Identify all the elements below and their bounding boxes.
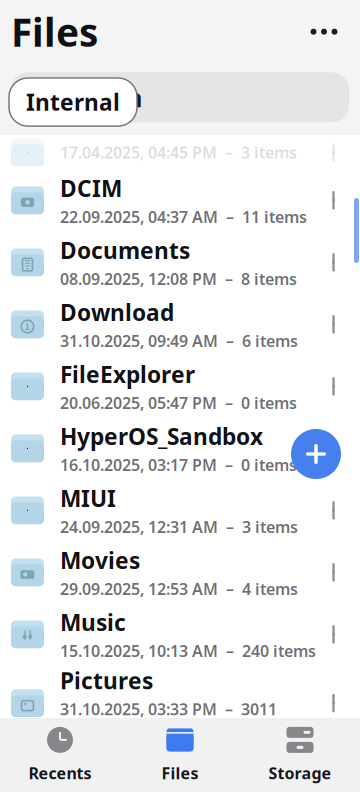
staticText: HyperOS_Sandbox — [60, 421, 263, 451]
button[interactable]: DCIM — [0, 169, 360, 231]
button[interactable]: Pictures — [0, 665, 360, 741]
staticText: FileExplorer — [60, 359, 195, 389]
button[interactable]: Storage — [240, 718, 360, 792]
staticText: Recents — [28, 762, 91, 784]
staticText: Documents — [60, 235, 190, 265]
staticText: 08.09.2025, 12:08 PM – 8 items — [60, 268, 297, 289]
button[interactable]: Search — [11, 72, 349, 122]
button[interactable]: Create new — [285, 423, 347, 485]
staticText: Storage — [268, 762, 331, 784]
button[interactable]: HyperOS_Sandbox — [0, 417, 360, 479]
staticText: 15.10.2025, 10:13 AM – 240 items — [60, 640, 316, 661]
staticText: 16.10.2025, 03:17 PM – 0 items — [60, 454, 297, 475]
button[interactable]: Recents — [0, 718, 120, 792]
staticText: Files — [161, 762, 198, 784]
staticText: Internal — [26, 87, 120, 117]
staticText: DCIM — [60, 173, 122, 203]
staticText: 24.09.2025, 12:31 AM – 3 items — [60, 516, 298, 537]
staticText: Music — [60, 607, 126, 637]
staticText: 20.06.2025, 05:47 PM – 0 items — [60, 392, 297, 413]
staticText: 31.10.2025, 09:49 AM – 6 items — [60, 330, 298, 351]
button[interactable]: Files — [120, 718, 240, 792]
staticText: 31.10.2025, 03:33 PM – 3011 items — [60, 698, 277, 741]
staticText: Search — [58, 80, 142, 114]
button[interactable]: MIUI — [0, 479, 360, 541]
staticText: Ringtones — [60, 746, 175, 776]
button[interactable]: More options — [301, 12, 347, 52]
staticText: 22.09.2025, 04:37 AM – 11 items — [60, 206, 307, 227]
button[interactable]: FileExplorer — [0, 355, 360, 417]
staticText: MIUI — [60, 483, 116, 513]
staticText: 17.04.2025, 04:45 PM – 3 items — [60, 142, 297, 163]
staticText: Movies — [60, 545, 140, 575]
staticText: Files — [11, 6, 98, 57]
button[interactable]: Documents — [0, 231, 360, 293]
button[interactable]: Internal — [9, 78, 137, 126]
button[interactable]: Music — [0, 603, 360, 665]
button[interactable]: Movies — [0, 541, 360, 603]
staticText: Pictures — [60, 665, 153, 695]
staticText: Download — [60, 297, 174, 327]
button[interactable]: Download — [0, 293, 360, 355]
staticText: 29.09.2025, 12:53 AM – 4 items — [60, 578, 298, 599]
